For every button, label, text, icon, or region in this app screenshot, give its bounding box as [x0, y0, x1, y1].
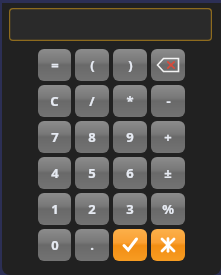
staticText: 4 [51, 164, 59, 182]
button[interactable]: 1 [38, 193, 71, 225]
staticText: 5 [88, 164, 96, 182]
staticText: - [166, 92, 171, 110]
staticText: = [51, 56, 59, 74]
staticText: C [50, 92, 59, 110]
staticText: + [164, 128, 172, 146]
staticText: 8 [88, 128, 96, 146]
staticText: 2 [88, 200, 96, 218]
button[interactable]: 7 [38, 121, 71, 153]
button[interactable]: % [151, 193, 185, 225]
button[interactable]: 5 [75, 157, 109, 189]
staticText: ) [128, 56, 133, 74]
staticText: ( [90, 56, 95, 74]
button[interactable]: + [151, 121, 185, 153]
button[interactable]: Expression input [9, 8, 212, 41]
button[interactable]: Accept [113, 229, 147, 261]
staticText: % [162, 200, 174, 218]
button[interactable]: 4 [38, 157, 71, 189]
button[interactable]: . [75, 229, 109, 261]
button[interactable]: 6 [113, 157, 147, 189]
staticText: 6 [126, 164, 134, 182]
button[interactable]: 8 [75, 121, 109, 153]
staticText: 1 [51, 200, 59, 218]
staticText: / [89, 92, 95, 110]
button[interactable]: / [75, 85, 109, 117]
staticText: 9 [126, 128, 134, 146]
staticText: 3 [126, 200, 134, 218]
button[interactable]: ) [113, 49, 147, 81]
staticText: . [90, 236, 94, 254]
button[interactable]: ( [75, 49, 109, 81]
staticText: 7 [51, 128, 59, 146]
staticText: * [126, 92, 134, 110]
staticText: 0 [51, 236, 59, 254]
button[interactable]: C [38, 85, 71, 117]
button[interactable]: 2 [75, 193, 109, 225]
button[interactable]: - [151, 85, 185, 117]
button[interactable]: 0 [38, 229, 71, 261]
button[interactable]: 3 [113, 193, 147, 225]
button[interactable]: ± [151, 157, 185, 189]
button[interactable]: 9 [113, 121, 147, 153]
button[interactable]: Cancel [151, 229, 185, 261]
button[interactable]: * [113, 85, 147, 117]
staticText: ± [164, 164, 172, 182]
button[interactable]: Backspace [151, 49, 185, 81]
button[interactable]: = [38, 49, 71, 81]
